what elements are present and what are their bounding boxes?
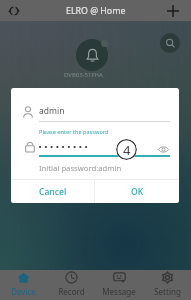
button[interactable]: Record [47,270,95,300]
staticText: admin [39,105,65,117]
staticText: OK [131,186,144,198]
button[interactable]: Search [160,33,180,53]
button[interactable]: Show password [156,142,170,156]
staticText: Cancel [39,186,67,198]
button[interactable]: Cancel [11,180,94,203]
staticText: DVB03-51FHA [64,71,103,79]
staticText: Record [58,286,85,297]
button[interactable]: Device [0,270,47,300]
staticText: Please enter the password [39,128,109,136]
button[interactable]: Setting [143,270,191,300]
button[interactable]: OK [95,180,179,203]
staticText: Initial password:admin [39,163,122,173]
button[interactable]: Message [95,270,143,300]
staticText: 4 [123,141,131,159]
staticText: Setting [154,286,181,297]
button[interactable]: Add device [164,2,182,20]
button[interactable]: Refresh [4,1,23,20]
staticText: Message [102,286,136,297]
staticText: ELRO @ Home [66,5,126,17]
staticText: Device [11,286,36,297]
